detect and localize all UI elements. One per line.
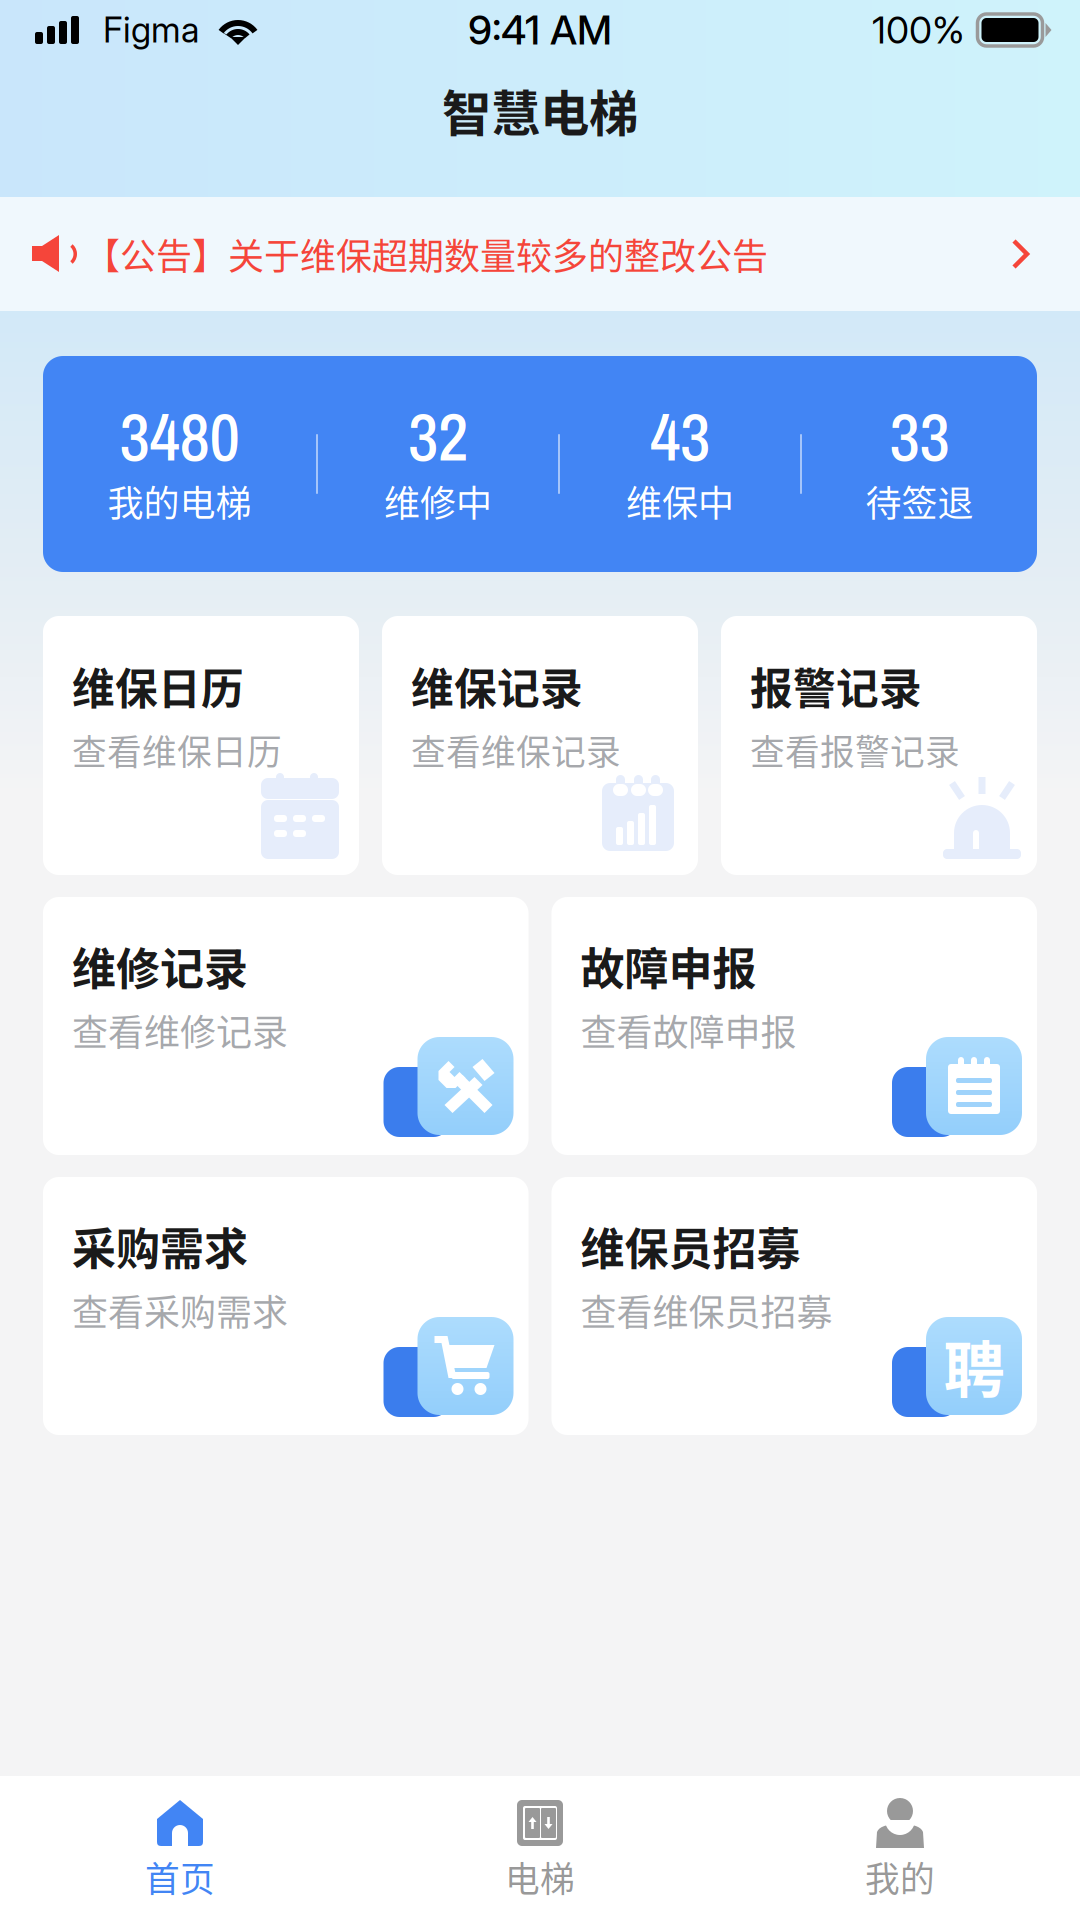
button[interactable]: 电梯 <box>360 1776 720 1920</box>
staticText: 维保中 <box>626 475 734 527</box>
button[interactable]: 维修记录 <box>43 897 528 1155</box>
staticText: 维保日历 <box>72 655 244 717</box>
staticText: 查看维修记录 <box>72 1004 288 1056</box>
staticText: 33 <box>889 392 949 481</box>
staticText: 报警记录 <box>750 655 922 717</box>
staticText: 查看故障申报 <box>580 1004 796 1056</box>
staticText: 100% <box>872 7 965 53</box>
button[interactable]: 报警记录 <box>721 616 1037 875</box>
staticText: 32 <box>408 392 468 481</box>
button[interactable]: 维保日历 <box>43 616 359 875</box>
staticText: 维保员招募 <box>580 1214 800 1278</box>
button[interactable]: 维保记录 <box>382 616 698 875</box>
staticText: 3480 <box>119 392 239 481</box>
staticText: 聘 <box>943 1322 1004 1410</box>
staticText: 维保记录 <box>411 655 583 717</box>
button[interactable]: 聘 <box>551 1177 1037 1435</box>
staticText: 首页 <box>145 1852 215 1902</box>
staticText: Figma <box>103 9 199 51</box>
button[interactable]: 【公告】关于维保超期数量较多的整改公告 <box>0 197 1080 311</box>
staticText: 9:41 AM <box>468 6 612 54</box>
button[interactable]: 采购需求 <box>43 1177 528 1435</box>
staticText: 【公告】关于维保超期数量较多的整改公告 <box>84 228 768 280</box>
staticText: 电梯 <box>505 1852 575 1902</box>
staticText: 我的 <box>865 1852 935 1902</box>
staticText: 查看报警记录 <box>750 725 960 775</box>
staticText: 查看采购需求 <box>72 1284 288 1336</box>
staticText: 查看维保日历 <box>72 725 282 775</box>
staticText: 查看维保员招募 <box>580 1284 832 1336</box>
staticText: 采购需求 <box>72 1214 248 1278</box>
staticText: 维修记录 <box>72 934 248 998</box>
staticText: 待签退 <box>865 475 973 527</box>
button[interactable]: 故障申报 <box>551 897 1037 1155</box>
button[interactable]: 我的 <box>720 1776 1080 1920</box>
staticText: 故障申报 <box>580 934 756 998</box>
staticText: 维修中 <box>384 475 492 527</box>
staticText: 43 <box>650 392 710 481</box>
staticText: 查看维保记录 <box>411 725 621 775</box>
staticText: 我的电梯 <box>107 475 251 527</box>
staticText: 智慧电梯 <box>442 74 638 146</box>
button[interactable]: 首页 <box>0 1776 360 1920</box>
